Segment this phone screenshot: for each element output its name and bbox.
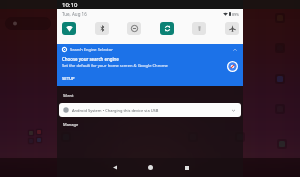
staticText: 89% (232, 12, 240, 17)
staticText: Choose your search engine (62, 56, 119, 62)
button[interactable]: Quick setting toggle (192, 22, 206, 35)
button[interactable]: Quick setting toggle (62, 22, 76, 35)
button[interactable]: Quick setting toggle (160, 22, 174, 35)
button[interactable]: Search Engine Selector (57, 44, 243, 86)
button[interactable]: Collapse (232, 47, 238, 53)
staticText: Tue, Aug 16 (62, 11, 87, 17)
staticText: Silent (63, 93, 74, 98)
button[interactable]: Android System • Charging this device vi… (59, 103, 241, 117)
button[interactable]: Quick setting toggle (95, 22, 109, 35)
staticText: Manage (63, 122, 79, 127)
staticText: 10:10 (62, 1, 78, 9)
staticText: Android System • Charging this device vi… (72, 108, 159, 113)
button[interactable]: Quick setting toggle (225, 22, 239, 35)
button[interactable]: Quick setting toggle (127, 22, 141, 35)
button[interactable]: Home (141, 158, 160, 177)
staticText: SETUP (62, 76, 75, 82)
staticText: Search Engine Selector (70, 47, 113, 52)
button[interactable]: Back (105, 158, 124, 177)
staticText: Set the default for your home screen & G… (62, 63, 168, 69)
button[interactable]: Recents (177, 158, 196, 177)
